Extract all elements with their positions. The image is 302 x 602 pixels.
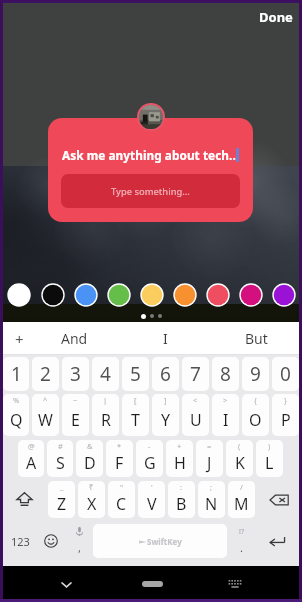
staticText: B	[176, 493, 187, 515]
button[interactable]: 123	[3, 524, 37, 558]
button[interactable]: Emoji	[37, 524, 65, 558]
staticText: 6	[160, 361, 171, 387]
staticText: U	[190, 409, 202, 431]
staticText: '	[151, 482, 153, 492]
button[interactable]: Done	[255, 4, 297, 30]
button[interactable]: _	[48, 481, 75, 518]
button[interactable]: Enter	[255, 524, 299, 558]
staticText: ₹	[89, 482, 94, 492]
staticText: F	[115, 452, 124, 474]
button[interactable]: Colour	[69, 283, 102, 307]
button[interactable]: =	[196, 440, 223, 477]
button[interactable]: -	[136, 440, 163, 477]
button[interactable]: (	[226, 440, 253, 477]
button[interactable]: 3	[62, 357, 89, 391]
button[interactable]: Colour	[36, 283, 69, 307]
button[interactable]: 1	[3, 357, 29, 391]
button[interactable]: Colour	[2, 283, 36, 307]
staticText: And	[61, 329, 88, 348]
button[interactable]: Add to dictionary	[0, 322, 38, 355]
button[interactable]: }	[272, 394, 299, 436]
button[interactable]: 0	[272, 357, 299, 391]
button[interactable]: 5	[122, 357, 149, 391]
button[interactable]: Colour	[102, 283, 135, 307]
button[interactable]: !?	[227, 524, 255, 558]
staticText: 4	[100, 361, 111, 387]
staticText: P	[281, 409, 291, 431]
button[interactable]: SwiftKey	[93, 524, 227, 558]
staticText: I	[163, 329, 168, 348]
staticText: *	[117, 441, 122, 451]
button[interactable]: >	[212, 394, 239, 436]
staticText: E	[71, 409, 80, 431]
staticText: +	[177, 441, 182, 451]
staticText: H	[174, 452, 186, 474]
button[interactable]: |	[92, 394, 119, 436]
button[interactable]: %	[3, 394, 29, 436]
staticText: D	[84, 452, 96, 474]
staticText: 1	[11, 361, 22, 387]
button[interactable]: 2	[32, 357, 59, 391]
staticText: "	[120, 482, 124, 492]
button[interactable]: :	[168, 481, 195, 518]
button[interactable]: Type something...	[61, 174, 240, 208]
staticText: Ask me anything about tech..	[62, 147, 236, 163]
button[interactable]: ^	[32, 394, 59, 436]
staticText: :	[180, 482, 183, 492]
button[interactable]: Home	[134, 569, 170, 599]
button[interactable]: ]	[152, 394, 179, 436]
button[interactable]: #	[47, 440, 73, 477]
button[interactable]: 6	[152, 357, 179, 391]
button[interactable]: "	[108, 481, 135, 518]
staticText: M	[234, 493, 249, 515]
button[interactable]: But	[211, 322, 302, 355]
button[interactable]: @	[18, 440, 44, 477]
staticText: <	[193, 395, 198, 405]
button[interactable]: )	[256, 440, 283, 477]
staticText: _	[60, 482, 64, 492]
staticText: {	[254, 395, 257, 405]
button[interactable]: ;	[198, 481, 225, 518]
button[interactable]: Colour	[135, 283, 168, 307]
staticText: %	[13, 395, 20, 405]
button[interactable]: ₹	[78, 481, 105, 518]
button[interactable]: Colour	[267, 283, 300, 307]
button[interactable]: 8	[212, 357, 239, 391]
staticText: #	[58, 441, 63, 451]
button[interactable]: &	[76, 440, 103, 477]
button[interactable]: Colour	[201, 283, 234, 307]
staticText: A	[26, 452, 37, 474]
button[interactable]: Switch keyboard	[217, 566, 253, 602]
staticText: 0	[280, 361, 291, 387]
staticText: G	[144, 452, 156, 474]
button[interactable]: '	[138, 481, 165, 518]
staticText: Z	[57, 493, 67, 515]
button[interactable]: Voice input	[65, 524, 93, 558]
button[interactable]: ~	[62, 394, 89, 436]
button[interactable]: Colour	[168, 283, 201, 307]
staticText: >	[223, 395, 228, 405]
staticText: 123	[11, 534, 30, 549]
button[interactable]: [	[122, 394, 149, 436]
button[interactable]: {	[242, 394, 269, 436]
button[interactable]: I	[120, 322, 211, 355]
staticText: @	[28, 441, 35, 451]
staticText: [	[134, 395, 137, 405]
button[interactable]: <	[182, 394, 209, 436]
button[interactable]: /	[228, 481, 255, 518]
staticText: Q	[10, 409, 23, 431]
button[interactable]: +	[166, 440, 193, 477]
button[interactable]: *	[106, 440, 133, 477]
button[interactable]: 4	[92, 357, 119, 391]
button[interactable]: 9	[242, 357, 269, 391]
staticText: C	[116, 493, 127, 515]
button[interactable]: Hide keyboard	[48, 566, 84, 602]
button[interactable]: And	[29, 322, 120, 355]
button[interactable]: Ask me anything about tech..	[48, 118, 253, 222]
button[interactable]: Backspace	[258, 481, 299, 518]
staticText: +	[15, 329, 24, 349]
button[interactable]: Colour	[234, 283, 267, 307]
button[interactable]: Shift	[3, 481, 45, 518]
button[interactable]: 7	[182, 357, 209, 391]
staticText: (	[238, 441, 241, 451]
